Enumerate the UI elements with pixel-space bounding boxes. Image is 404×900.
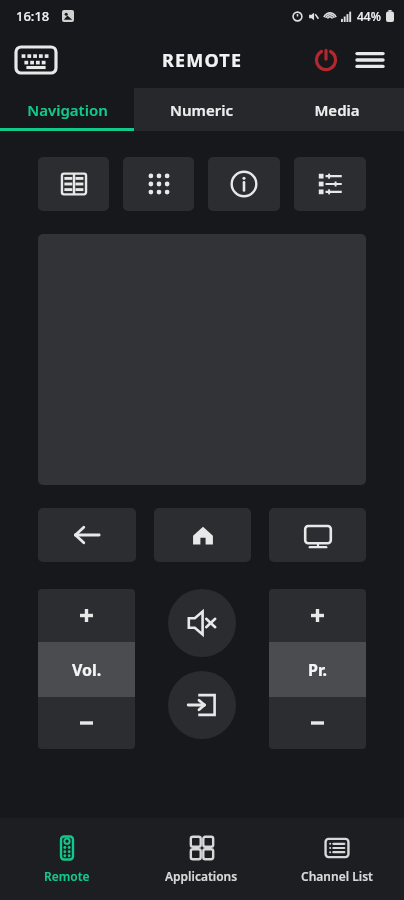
staticText: Remote <box>44 868 90 884</box>
staticText: Vol. <box>72 659 102 681</box>
button[interactable]: Back <box>38 508 136 562</box>
button[interactable]: Media <box>269 88 404 131</box>
staticText: Channel List <box>301 868 373 884</box>
button[interactable]: Vol. up <box>38 589 135 642</box>
button[interactable]: Guide <box>38 157 109 211</box>
button[interactable]: Numeric <box>134 88 269 131</box>
button[interactable]: Navigation <box>0 88 134 131</box>
button[interactable]: Pr. up <box>269 589 366 642</box>
button[interactable]: Keyboard <box>14 46 58 74</box>
button[interactable]: TV <box>269 508 366 562</box>
button[interactable]: Power <box>304 38 348 82</box>
button[interactable]: Settings <box>294 157 366 211</box>
button[interactable]: Keypad <box>123 157 194 211</box>
staticText: Media <box>314 100 360 120</box>
button[interactable]: Pr. <box>269 642 366 697</box>
staticText: Numeric <box>170 100 233 120</box>
staticText: 44% <box>357 8 381 24</box>
button[interactable]: Info <box>208 157 280 211</box>
button[interactable]: Remote <box>0 818 134 900</box>
staticText: 16:18 <box>16 7 50 25</box>
staticText: Pr. <box>308 659 328 681</box>
button[interactable]: Vol. down <box>38 697 135 749</box>
button[interactable]: Vol. <box>38 642 135 697</box>
staticText: Navigation <box>27 100 108 120</box>
staticText: REMOTE <box>162 48 243 73</box>
button[interactable]: Pr. down <box>269 697 366 749</box>
button[interactable]: Applications <box>134 818 269 900</box>
staticText: Applications <box>165 868 238 884</box>
button[interactable]: Menu <box>348 38 392 82</box>
button[interactable]: Source <box>168 671 236 739</box>
button[interactable]: Home <box>154 508 251 562</box>
button[interactable]: Channel List <box>269 818 404 900</box>
button[interactable]: Mute <box>168 589 236 657</box>
